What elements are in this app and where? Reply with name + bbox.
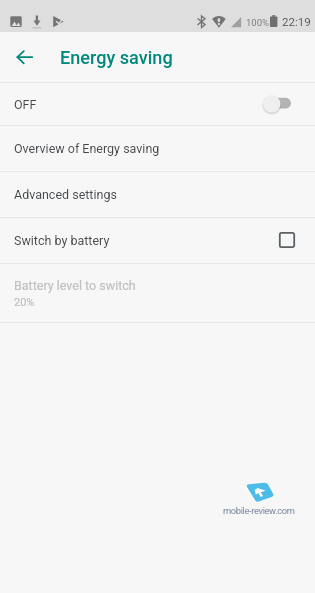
staticText: Overview of Energy saving [14, 141, 295, 156]
button[interactable]: Overview of Energy saving [0, 126, 315, 171]
button[interactable]: Switch by battery [277, 230, 297, 250]
staticText: 22:19 [282, 15, 311, 28]
button[interactable]: Switch by battery [0, 218, 315, 263]
staticText: mobile-review.com [223, 505, 295, 516]
staticText: 20% [14, 296, 35, 309]
button[interactable]: Back [2, 35, 46, 79]
staticText: Battery level to switch [14, 278, 136, 293]
button[interactable]: Advanced settings [0, 172, 315, 217]
staticText: OFF [14, 97, 259, 112]
staticText: 100% [246, 17, 269, 28]
button[interactable]: Battery level to switch [0, 264, 315, 322]
staticText: Advanced settings [14, 187, 295, 202]
staticText: Energy saving [60, 47, 173, 68]
staticText: Switch by battery [14, 233, 275, 248]
button[interactable]: OFF [0, 83, 315, 125]
button[interactable]: Energy saving toggle [259, 92, 295, 116]
